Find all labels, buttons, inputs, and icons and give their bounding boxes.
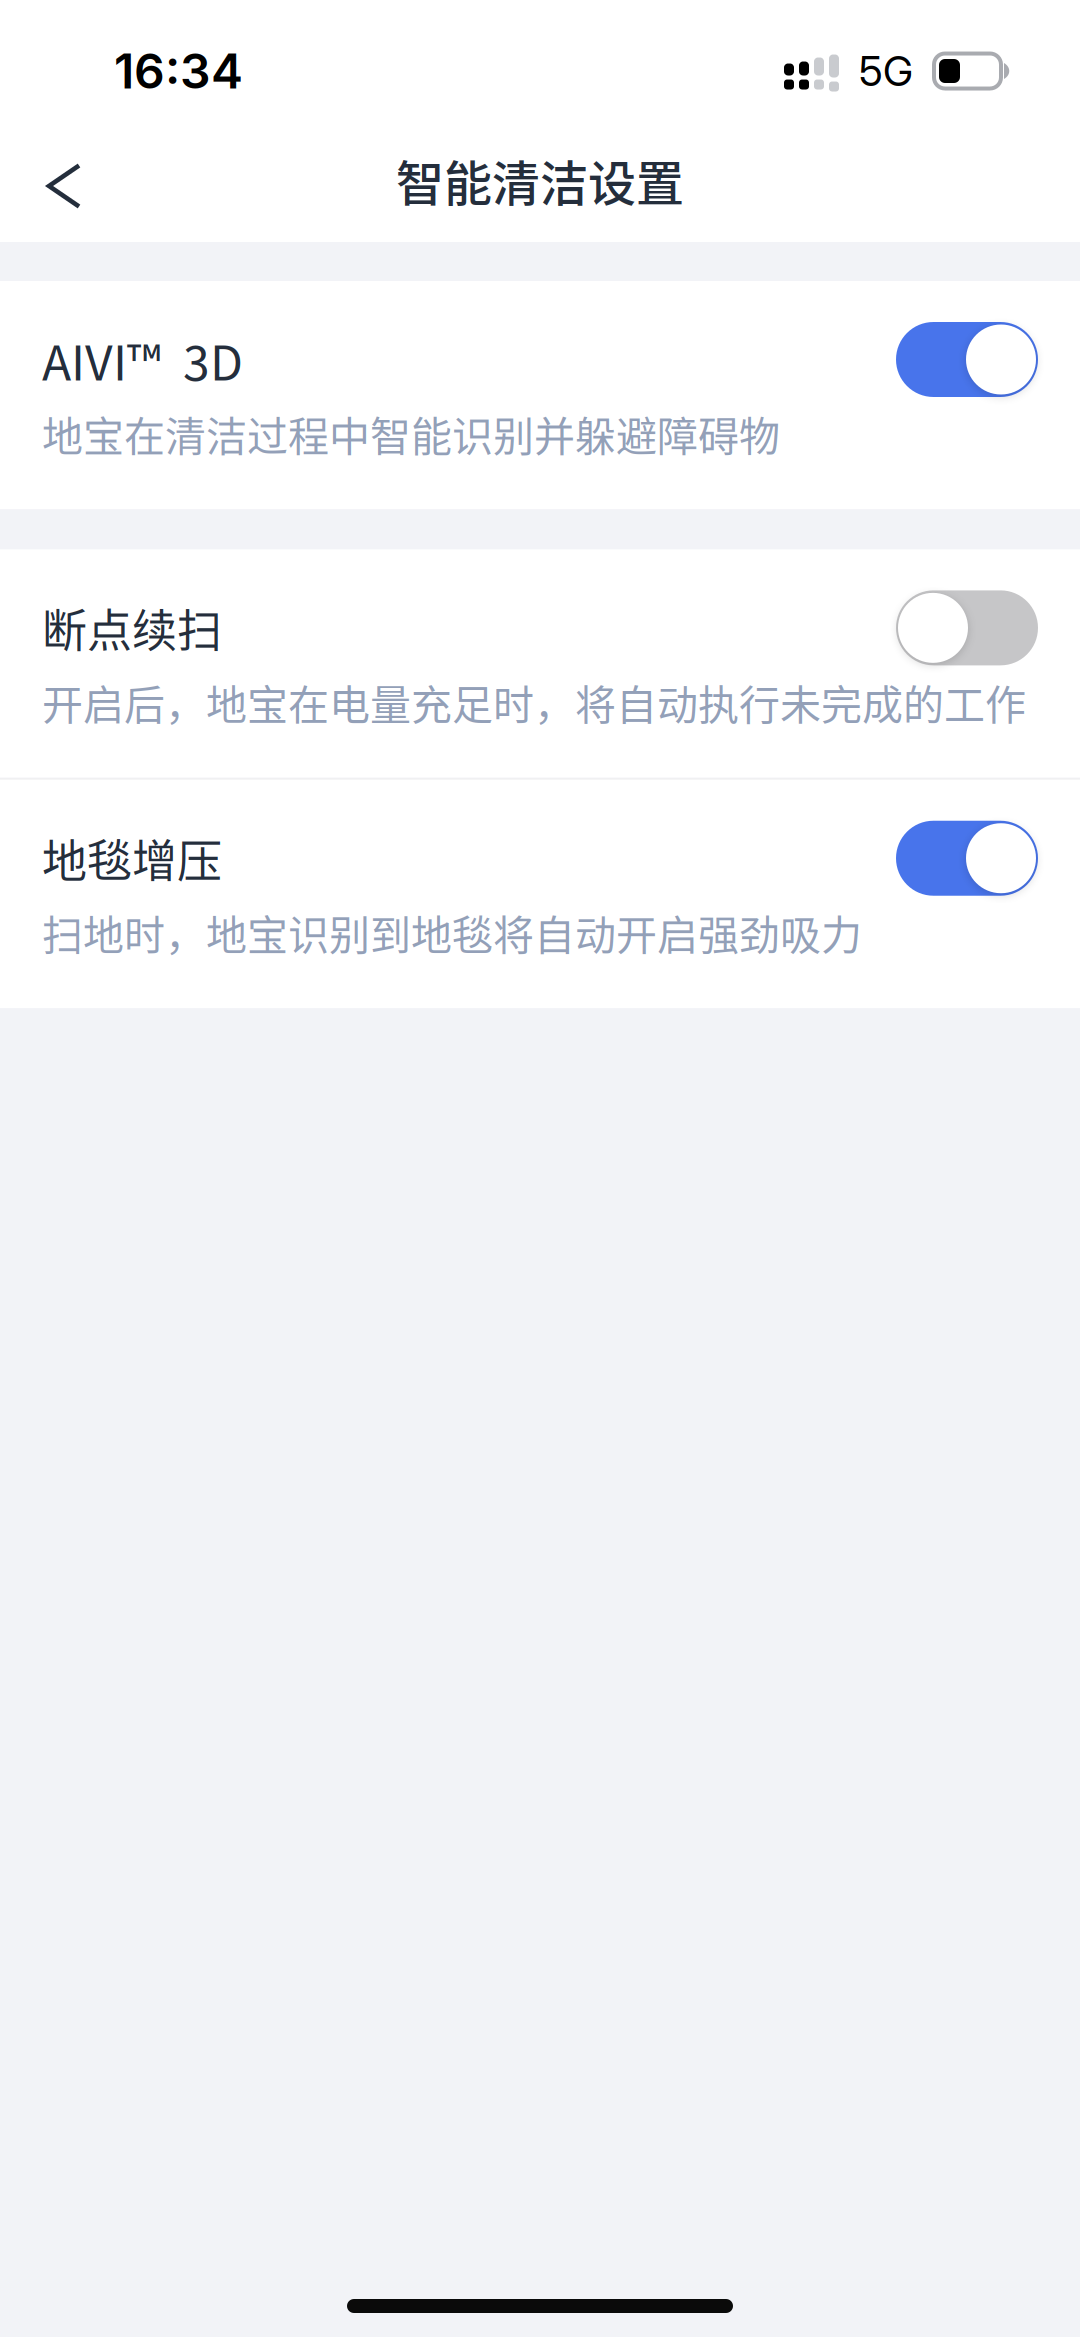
button[interactable]: 断点续扫 xyxy=(0,549,1080,778)
staticText: 地宝在清洁过程中智能识别并躲避障碍物 xyxy=(42,404,780,463)
button[interactable]: 地毯增压 xyxy=(896,821,1038,896)
staticText: 扫地时，地宝识别到地毯将自动开启强劲吸力 xyxy=(42,903,862,962)
button[interactable]: AIVI™ 3D xyxy=(896,322,1038,397)
button[interactable]: AIVI™ 3D xyxy=(0,281,1080,509)
staticText: AIVI™ 3D xyxy=(42,325,243,394)
button[interactable]: 地毯增压 xyxy=(0,780,1080,1008)
staticText: 地毯增压 xyxy=(42,826,222,891)
button[interactable]: Back xyxy=(0,130,128,242)
staticText: 开启后，地宝在电量充足时，将自动执行未完成的工作 xyxy=(42,672,1026,732)
staticText: 5G xyxy=(859,46,913,96)
staticText: 16:34 xyxy=(114,42,243,100)
staticText: 断点续扫 xyxy=(42,595,222,660)
button[interactable]: 断点续扫 xyxy=(896,590,1038,665)
staticText: 智能清洁设置 xyxy=(396,145,684,215)
